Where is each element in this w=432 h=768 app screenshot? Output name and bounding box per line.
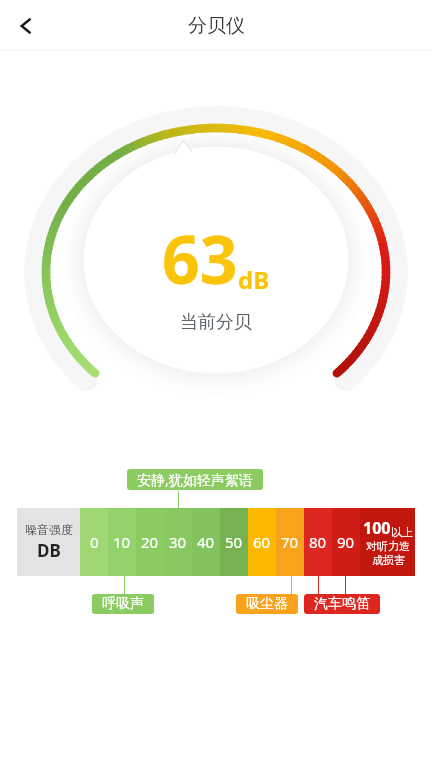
staticText: 对听力造 [366, 539, 410, 553]
staticText: 63 [162, 213, 238, 303]
staticText: 以上 [391, 525, 413, 539]
staticText: 呼吸声 [102, 595, 144, 613]
staticText: 50 [225, 532, 243, 552]
staticText: 分贝仪 [188, 14, 245, 38]
button[interactable]: 汽车鸣笛 [304, 594, 380, 614]
staticText: 汽车鸣笛 [314, 595, 370, 613]
staticText: 70 [281, 532, 299, 552]
staticText: 安静,犹如轻声絮语 [137, 470, 253, 489]
staticText: 60 [253, 532, 271, 552]
button[interactable]: 吸尘器 [236, 594, 298, 614]
button[interactable]: 呼吸声 [92, 594, 154, 614]
staticText: 30 [169, 532, 187, 552]
staticText: 噪音强度 [25, 522, 73, 537]
staticText: 10 [113, 532, 131, 552]
staticText: 成损害 [372, 553, 405, 567]
staticText: 40 [197, 532, 215, 552]
staticText: 90 [337, 532, 355, 552]
staticText: 20 [141, 532, 159, 552]
button[interactable]: Back [8, 8, 44, 44]
staticText: 吸尘器 [246, 595, 288, 613]
staticText: 100 [363, 517, 391, 539]
staticText: 0 [90, 532, 99, 552]
staticText: 当前分贝 [180, 311, 252, 334]
button[interactable]: 安静,犹如轻声絮语 [127, 469, 263, 490]
staticText: 80 [309, 532, 327, 552]
staticText: dB [238, 263, 270, 296]
staticText: DB [37, 539, 61, 562]
